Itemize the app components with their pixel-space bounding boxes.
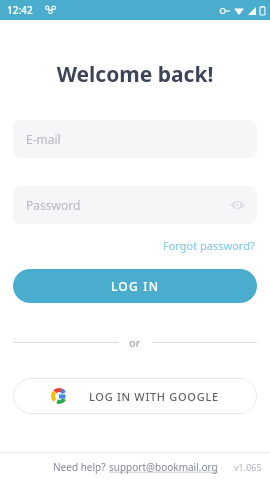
staticText: Welcome back! [0,60,270,89]
button[interactable]: support@bookmail.org [109,460,218,474]
staticText: 12:42 [7,3,33,17]
staticText: Forgot password? [163,238,255,253]
button[interactable]: LOG IN WITH GOOGLE [13,378,257,414]
staticText: Need help? [53,460,109,474]
staticText: LOG IN WITH GOOGLE [89,389,219,404]
staticText: E-mail [26,131,61,147]
staticText: LOG IN [111,278,160,294]
button[interactable]: Password [13,186,257,224]
staticText: v1.065 [234,461,262,473]
staticText: or [129,335,141,350]
button[interactable]: LOG IN [13,269,257,303]
button[interactable]: Forgot password? [161,236,257,255]
staticText: Password [26,197,81,213]
button[interactable]: E-mail [13,120,257,158]
staticText: support@bookmail.org [109,460,218,474]
button[interactable]: Show password [226,194,248,216]
